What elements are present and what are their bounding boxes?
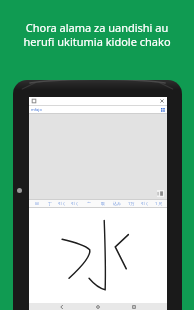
button[interactable]: Resize xyxy=(157,190,164,197)
other: Camera xyxy=(17,188,22,193)
button[interactable]: 丁 xyxy=(43,199,56,208)
button[interactable]: Recent apps xyxy=(131,304,137,310)
button[interactable]: Menu xyxy=(31,98,37,104)
staticText: 1 尺 xyxy=(155,201,163,206)
button[interactable]: Handwriting input area xyxy=(29,208,167,303)
button[interactable]: 込み xyxy=(110,199,124,208)
button[interactable]: 引く xyxy=(138,199,152,208)
button[interactable]: 目 xyxy=(30,199,43,208)
staticText: 込み xyxy=(113,201,122,206)
staticText: 引く xyxy=(58,201,67,206)
other: Apps xyxy=(161,108,165,112)
button[interactable]: mfajo xyxy=(29,106,167,113)
staticText: 亠 xyxy=(87,201,91,206)
staticText: 1万 xyxy=(128,201,135,206)
button[interactable]: 1万 xyxy=(124,199,138,208)
button[interactable]: More options xyxy=(159,98,165,104)
staticText: 丁 xyxy=(48,201,52,206)
button[interactable]: 引く xyxy=(56,199,69,208)
staticText: 引く xyxy=(141,201,150,206)
staticText: Chora alama za uandishi au herufi ukitum… xyxy=(10,20,184,49)
button[interactable]: Home xyxy=(95,304,101,310)
button[interactable]: 1 尺 xyxy=(152,199,166,208)
button[interactable]: Back xyxy=(59,304,65,310)
staticText: 引く xyxy=(71,201,80,206)
button[interactable]: 亠 xyxy=(82,199,96,208)
staticText: 目 xyxy=(35,201,39,206)
staticText: 取 xyxy=(101,201,105,206)
button[interactable]: 取 xyxy=(96,199,110,208)
staticText: mfajo xyxy=(31,107,42,112)
button[interactable]: 引く xyxy=(69,199,82,208)
